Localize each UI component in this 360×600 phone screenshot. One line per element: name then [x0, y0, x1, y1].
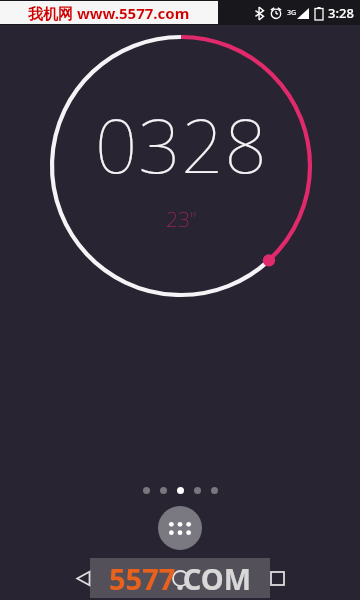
button[interactable]: Apps: [158, 506, 202, 550]
staticText: 23": [166, 205, 197, 234]
staticText: 3:28: [328, 4, 354, 22]
button[interactable]: Recent apps: [260, 561, 294, 595]
button[interactable]: 0328: [47, 32, 315, 300]
button[interactable]: Home: [163, 561, 197, 595]
staticText: .COM: [176, 559, 252, 598]
staticText: 我机网 www.5577.com: [28, 3, 190, 23]
staticText: 3G: [287, 8, 297, 18]
staticText: 0328: [95, 94, 268, 195]
staticText: 5577: [109, 559, 176, 598]
button[interactable]: Back: [66, 561, 100, 595]
